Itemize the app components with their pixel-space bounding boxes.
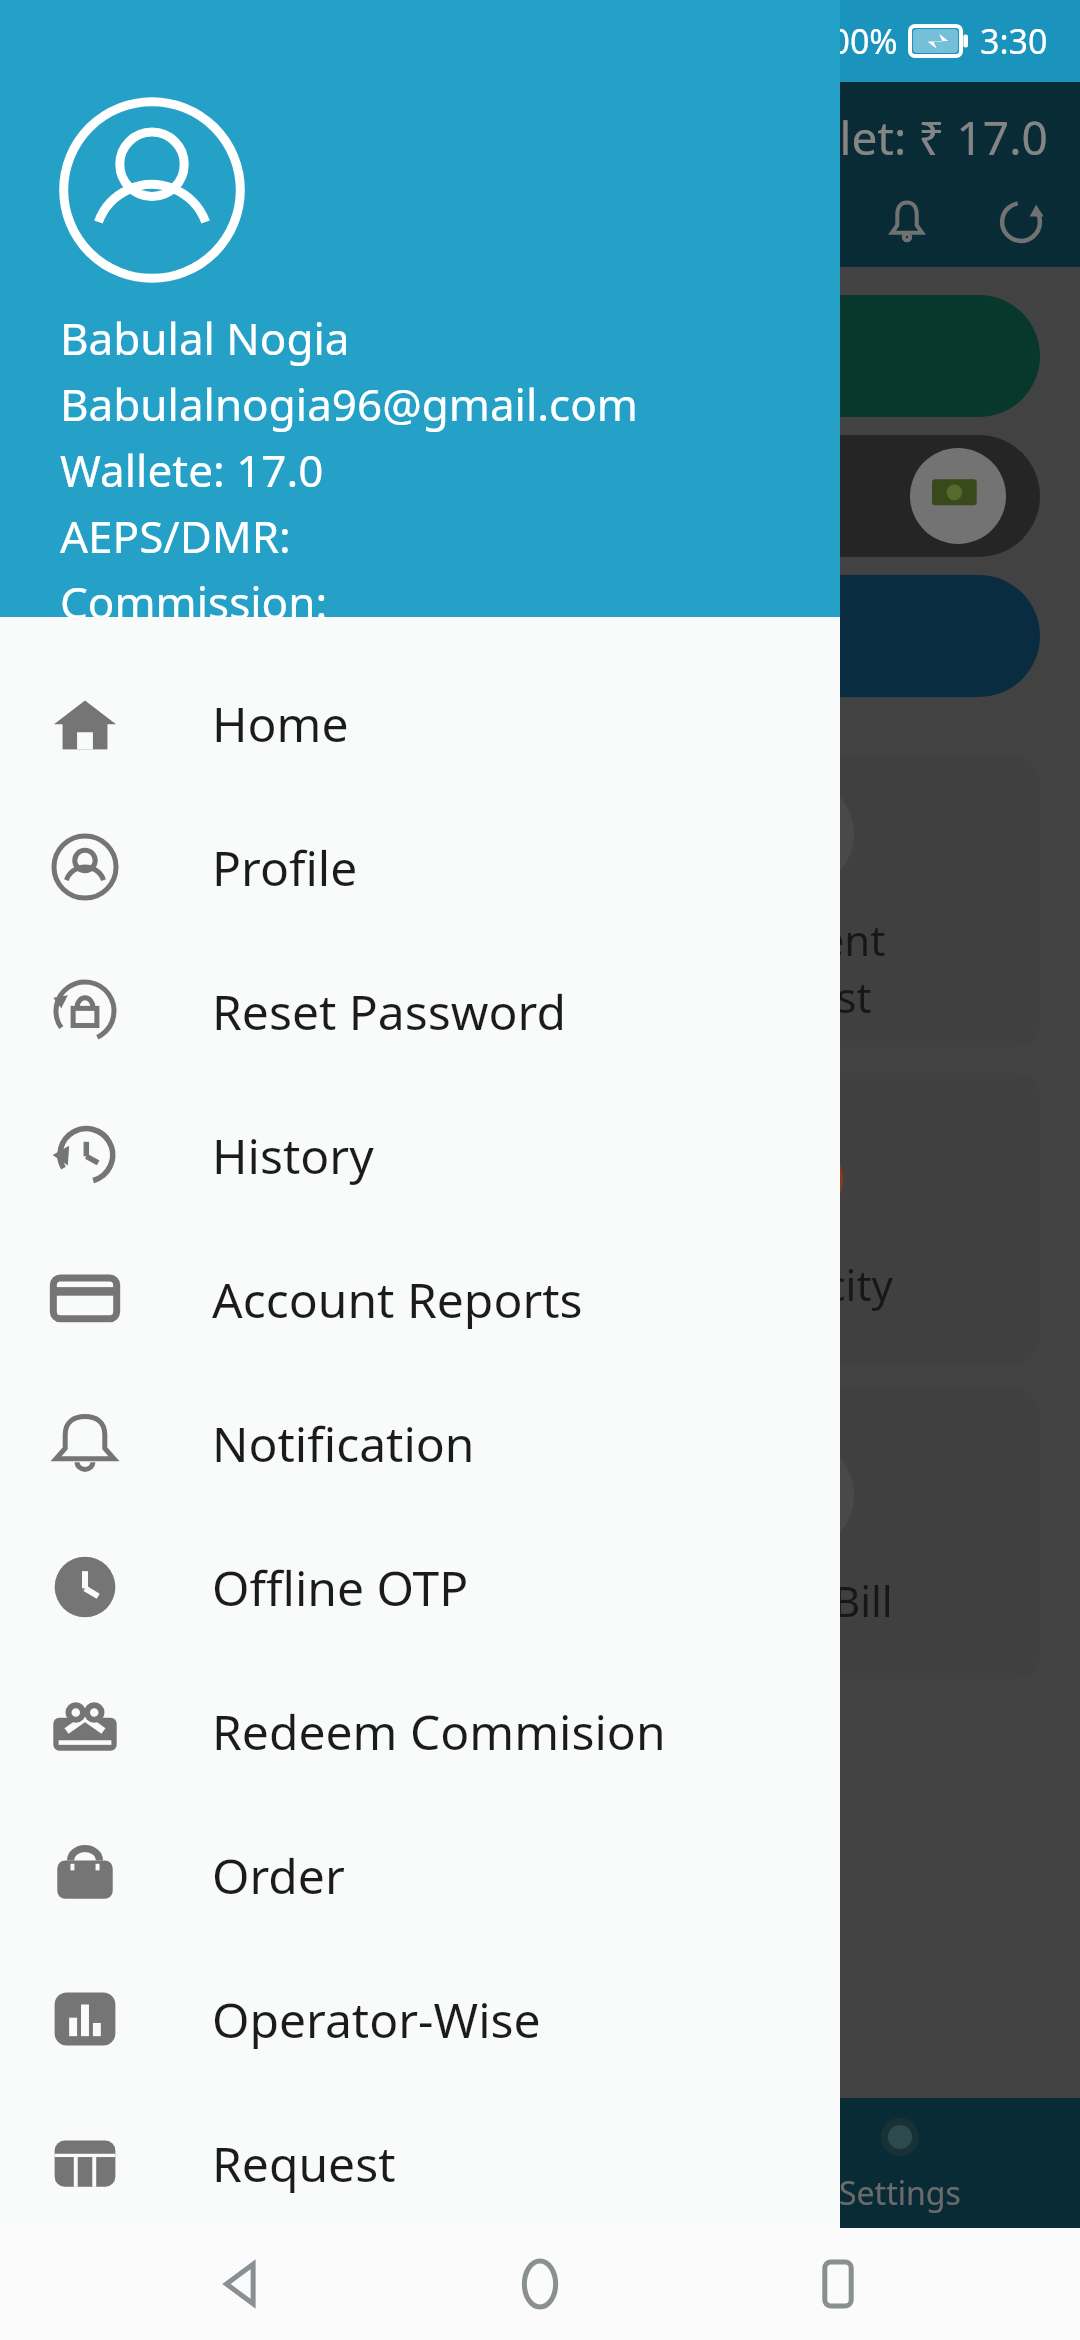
staticText: Home [134,2171,226,2215]
button[interactable]: Operator-Wise [0,1947,840,2091]
staticText: Reset Password [212,979,566,1044]
staticText: History [212,1123,374,1188]
button[interactable]: Request [0,2091,840,2235]
button[interactable]: Electricity [557,1073,1040,1363]
staticText: Commission: [60,572,328,617]
staticText: Wallete: 17.0 [60,440,324,500]
staticText: Order [212,1843,345,1908]
staticText: Account Reports [212,1267,583,1332]
staticText: Recharge [189,940,375,997]
staticText: Offline OTP [212,1555,469,1620]
button[interactable]: Recharge [40,757,523,1047]
button[interactable]: Reset Password [0,939,840,1083]
button[interactable]: Redeem Commision [0,1659,840,1803]
button[interactable]: Water Bill [557,1389,1040,1679]
button[interactable] [40,435,1040,557]
staticText: Settings [839,2171,961,2215]
button[interactable]: Home [0,651,840,795]
button[interactable]: Order [0,1803,840,1947]
button[interactable]: Profile [0,795,840,939]
button[interactable]: Settings [720,2098,1080,2228]
button[interactable]: History [0,1083,840,1227]
staticText: 3:30 [980,18,1048,64]
button[interactable]: Reports [360,2098,720,2228]
button[interactable] [40,575,1040,697]
button[interactable]: Account Reports [0,1227,840,1371]
staticText: Wallet: ₹ 17.0 [760,106,1048,169]
button[interactable]: DTH [40,1073,523,1363]
staticText: Notification [212,1411,475,1476]
staticText: 100% [811,18,898,64]
staticText: Profile [212,835,358,900]
staticText: Water Bill [704,1572,893,1629]
staticText: Operator-Wise [212,1987,541,2052]
button[interactable]: Notification [0,1371,840,1515]
staticText: Babulalnogia96@gmail.com [60,374,638,434]
staticText: Redeem Commision [212,1699,666,1764]
staticText: Electricity [704,1256,893,1313]
staticText: Gas [245,1572,320,1629]
button[interactable]: Home [485,2229,595,2339]
staticText: AEPS/DMR: [60,506,291,566]
button[interactable]: Offline OTP [0,1515,840,1659]
button[interactable]: Back [188,2229,298,2339]
button[interactable]: Home [0,2098,360,2228]
staticText: Request [212,2131,396,2196]
button[interactable]: Gas [40,1389,523,1679]
staticText: Home [212,691,349,756]
button[interactable] [40,295,1040,417]
button[interactable]: Recents [783,2229,893,2339]
staticText: Payment Request [711,911,886,1025]
button[interactable]: Payment Request [557,757,1040,1047]
staticText: Babulal Nogia [60,308,350,368]
staticText: DTH [240,1256,324,1313]
